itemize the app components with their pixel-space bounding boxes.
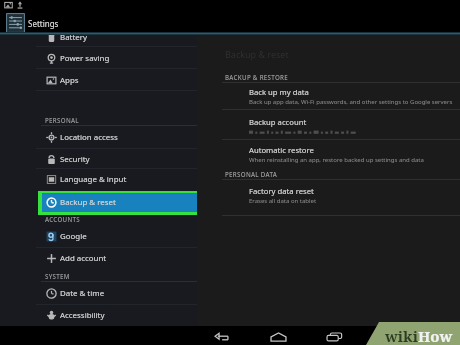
button[interactable]: Accessibility	[0, 305, 197, 326]
staticText: Date & time	[60, 288, 105, 299]
staticText: Security	[60, 154, 90, 165]
staticText: Automatic restore	[249, 145, 314, 155]
staticText: Apps	[60, 75, 79, 86]
button[interactable]: Recent apps	[320, 328, 348, 345]
button[interactable]: Location access	[0, 127, 197, 148]
staticText: When reinstalling an app, restore backed…	[249, 156, 424, 164]
button[interactable]: Settings app icon	[6, 13, 25, 33]
button[interactable]: Home	[264, 328, 292, 345]
button[interactable]: Security	[0, 149, 197, 170]
staticText: Back up app data, Wi-Fi passwords, and o…	[249, 98, 453, 106]
staticText: Add account	[60, 253, 107, 264]
staticText: Google	[60, 231, 87, 242]
staticText: Accessibility	[60, 310, 105, 321]
staticText: How	[418, 326, 453, 345]
staticText: Backup & reset	[225, 48, 289, 60]
button[interactable]: Date & time	[0, 283, 197, 304]
staticText: ACCOUNTS	[45, 215, 81, 223]
button[interactable]: Apps	[0, 70, 197, 91]
button[interactable]: Backup account	[197, 117, 460, 137]
staticText: Language & input	[60, 174, 127, 185]
staticText: Power saving	[60, 53, 110, 64]
staticText: PERSONAL	[45, 116, 79, 124]
staticText: Backup & reset	[60, 197, 116, 208]
staticText: Erases all data on tablet	[249, 197, 317, 205]
button[interactable]: Backup & reset	[42, 193, 197, 212]
staticText: Settings	[28, 18, 59, 29]
staticText: Factory data reset	[249, 186, 314, 196]
button[interactable]: Factory data reset	[197, 186, 460, 206]
staticText: PERSONAL DATA	[225, 170, 278, 178]
button[interactable]: Back up my data	[197, 87, 460, 107]
staticText: Battery	[60, 32, 87, 43]
button[interactable]: Battery	[0, 27, 197, 48]
button[interactable]: Back	[208, 328, 236, 345]
button[interactable]: Language & input	[0, 169, 197, 190]
button[interactable]: Add account	[0, 248, 197, 269]
button[interactable]: Automatic restore	[197, 145, 460, 165]
staticText: wiki	[385, 326, 418, 345]
button[interactable]: Google	[0, 226, 197, 247]
button[interactable]: Power saving	[0, 48, 197, 69]
staticText: BACKUP & RESTORE	[225, 73, 289, 81]
staticText: Location access	[60, 132, 118, 143]
staticText: Backup account	[249, 117, 307, 127]
staticText: SYSTEM	[45, 272, 70, 280]
staticText: Back up my data	[249, 87, 309, 97]
